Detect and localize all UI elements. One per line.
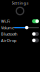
staticText: Wi-Fi: [1, 18, 10, 24]
button[interactable]: [32, 32, 39, 36]
staticText: Volume: [1, 25, 14, 30]
staticText: Settings: [11, 0, 28, 6]
button[interactable]: [32, 19, 39, 23]
button[interactable]: [32, 38, 39, 42]
staticText: AirDrop: [1, 38, 16, 43]
staticText: Bluetooth: [1, 31, 17, 37]
